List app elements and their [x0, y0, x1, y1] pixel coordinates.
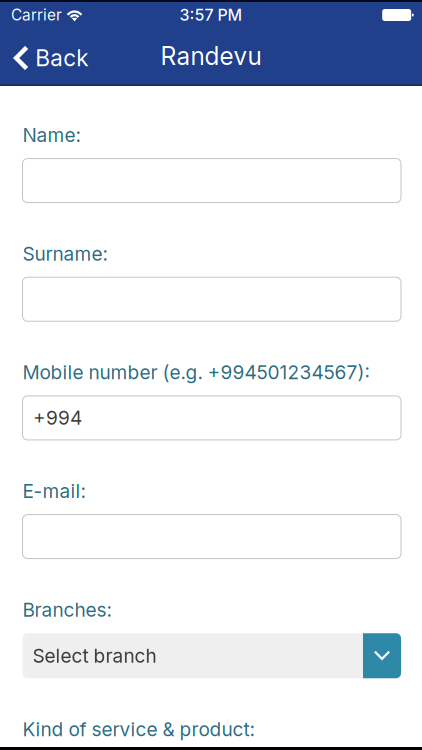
staticText: Kind of service & product: [22, 718, 254, 741]
button[interactable]: +994 [22, 396, 401, 440]
staticText: Back [35, 44, 88, 72]
button[interactable]: Select branch [22, 633, 401, 678]
button[interactable]: Back [0, 30, 102, 86]
staticText: Carrier [11, 6, 62, 24]
staticText: 3:57 PM [179, 5, 242, 25]
staticText: +994 [33, 406, 82, 429]
staticText: Surname: [22, 242, 107, 265]
staticText: Branches: [22, 598, 111, 621]
button[interactable] [22, 277, 401, 321]
staticText: Randevu [160, 41, 261, 71]
staticText: Select branch [32, 644, 156, 667]
staticText: E-mail: [22, 479, 85, 503]
staticText: Name: [22, 123, 80, 147]
staticText: Mobile number (e.g. +994501234567): [22, 361, 369, 384]
button[interactable] [22, 159, 401, 203]
button[interactable] [22, 515, 401, 559]
